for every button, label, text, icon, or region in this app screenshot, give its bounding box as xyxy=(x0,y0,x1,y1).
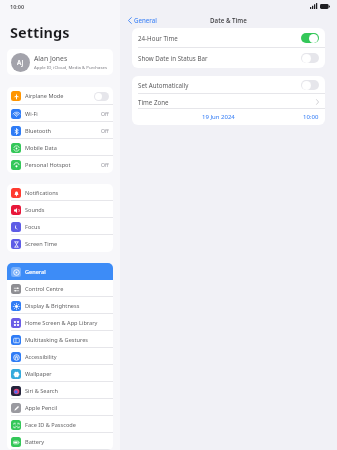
staticText: 10:00 xyxy=(10,3,25,10)
staticText: Airplane Mode xyxy=(25,92,64,100)
staticText: Screen Time xyxy=(25,240,58,248)
button[interactable]: Face ID & Passcode xyxy=(7,416,113,433)
staticText: Off xyxy=(101,110,109,117)
button[interactable]: Display & Brightness xyxy=(7,297,113,314)
staticText: Set Automatically xyxy=(138,81,189,89)
button[interactable]: Bluetooth xyxy=(7,122,113,139)
staticText: Personal Hotspot xyxy=(25,161,71,169)
button[interactable]: 24-Hour Time xyxy=(132,28,325,48)
staticText: AJ xyxy=(17,58,24,67)
button[interactable]: Wallpaper xyxy=(7,365,113,382)
button[interactable]: Accessibility xyxy=(7,348,113,365)
staticText: Alan Jones xyxy=(34,54,68,63)
button[interactable]: Multitasking & Gestures xyxy=(7,331,113,348)
staticText: Mobile Data xyxy=(25,144,57,152)
button[interactable]: Personal Hotspot xyxy=(7,156,113,173)
button[interactable]: Airplane Mode xyxy=(7,87,113,105)
staticText: Sounds xyxy=(25,206,45,214)
button[interactable]: Toggle on xyxy=(301,33,319,43)
staticText: Apple Pencil xyxy=(25,404,58,412)
staticText: Bluetooth xyxy=(25,127,51,135)
staticText: Display & Brightness xyxy=(25,302,80,310)
staticText: Time Zone xyxy=(138,98,169,106)
staticText: Control Centre xyxy=(25,285,64,293)
staticText: 10:00 xyxy=(303,113,319,121)
button[interactable]: Mobile Data xyxy=(7,139,113,156)
button[interactable]: Notifications xyxy=(7,184,113,201)
staticText: Off xyxy=(101,161,109,168)
staticText: Off xyxy=(101,127,109,134)
button[interactable]: Sounds xyxy=(7,201,113,218)
staticText: Notifications xyxy=(25,189,59,197)
button[interactable]: Time Zone xyxy=(132,94,325,109)
staticText: Wi-Fi xyxy=(25,110,38,118)
button[interactable]: Toggle off xyxy=(94,92,109,101)
staticText: Date & Time xyxy=(210,16,247,24)
button[interactable]: Focus xyxy=(7,218,113,235)
button[interactable]: Apple Pencil xyxy=(7,399,113,416)
button[interactable]: Toggle off xyxy=(301,80,319,90)
button[interactable]: Set Automatically xyxy=(132,76,325,94)
staticText: Show Date in Status Bar xyxy=(138,54,208,62)
staticText: Apple ID, iCloud, Media & Purchases xyxy=(34,64,107,70)
staticText: Face ID & Passcode xyxy=(25,421,76,429)
button[interactable]: Screen Time xyxy=(7,235,113,252)
button[interactable]: Show Date in Status Bar xyxy=(132,48,325,68)
staticText: 19 Jun 2024 xyxy=(202,113,235,121)
staticText: Multitasking & Gestures xyxy=(25,336,89,344)
button[interactable]: Toggle off xyxy=(301,53,319,63)
button[interactable]: 19 Jun 2024 xyxy=(132,109,325,125)
button[interactable]: AJ xyxy=(7,49,113,75)
button[interactable]: Wi-Fi xyxy=(7,105,113,122)
staticText: Battery xyxy=(25,438,45,446)
staticText: Accessibility xyxy=(25,353,57,361)
staticText: 24-Hour Time xyxy=(138,34,178,42)
staticText: General xyxy=(25,268,46,276)
staticText: Wallpaper xyxy=(25,370,52,378)
staticText: Focus xyxy=(25,223,41,231)
button[interactable]: Siri & Search xyxy=(7,382,113,399)
button[interactable]: General xyxy=(7,263,113,280)
button[interactable]: Control Centre xyxy=(7,280,113,297)
staticText: General xyxy=(134,16,157,24)
button[interactable]: General xyxy=(126,14,159,26)
button[interactable]: Battery xyxy=(7,433,113,450)
button[interactable]: Home Screen & App Library xyxy=(7,314,113,331)
staticText: Home Screen & App Library xyxy=(25,319,98,327)
staticText: Siri & Search xyxy=(25,387,58,395)
staticText: Settings xyxy=(10,22,70,42)
